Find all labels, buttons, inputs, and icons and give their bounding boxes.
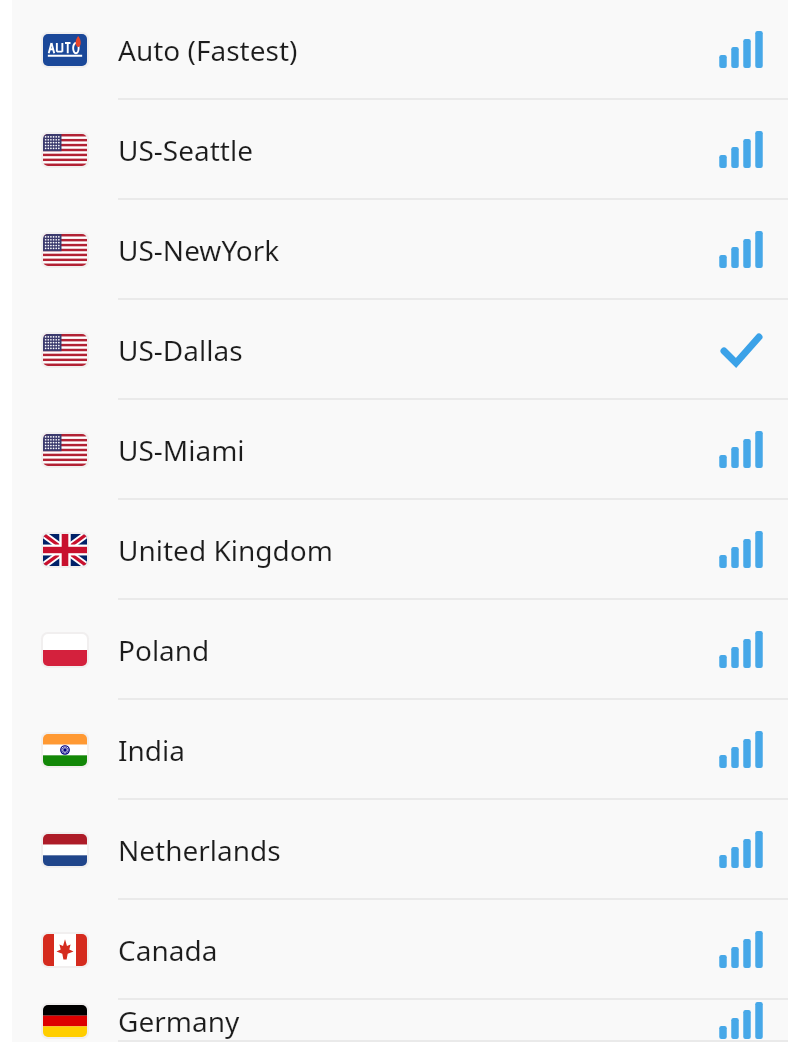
button[interactable]: US-NewYork <box>0 200 800 300</box>
button[interactable]: Germany <box>0 1000 800 1042</box>
staticText: Germany <box>118 1002 240 1040</box>
button[interactable]: Canada <box>0 900 800 1000</box>
staticText: US-Seattle <box>118 131 253 169</box>
button[interactable]: US-Dallas <box>0 300 800 400</box>
button[interactable]: US-Seattle <box>0 100 800 200</box>
button[interactable]: India <box>0 700 800 800</box>
button[interactable]: Auto (Fastest) <box>0 0 800 100</box>
button[interactable]: United Kingdom <box>0 500 800 600</box>
staticText: US-NewYork <box>118 231 280 269</box>
staticText: Canada <box>118 931 218 969</box>
staticText: Netherlands <box>118 831 281 869</box>
button[interactable]: Poland <box>0 600 800 700</box>
button[interactable]: US-Miami <box>0 400 800 500</box>
staticText: United Kingdom <box>118 531 333 569</box>
button[interactable]: Netherlands <box>0 800 800 900</box>
staticText: Auto (Fastest) <box>118 31 298 69</box>
staticText: India <box>118 731 185 769</box>
staticText: US-Dallas <box>118 331 243 369</box>
staticText: Poland <box>118 631 210 669</box>
staticText: US-Miami <box>118 431 245 469</box>
